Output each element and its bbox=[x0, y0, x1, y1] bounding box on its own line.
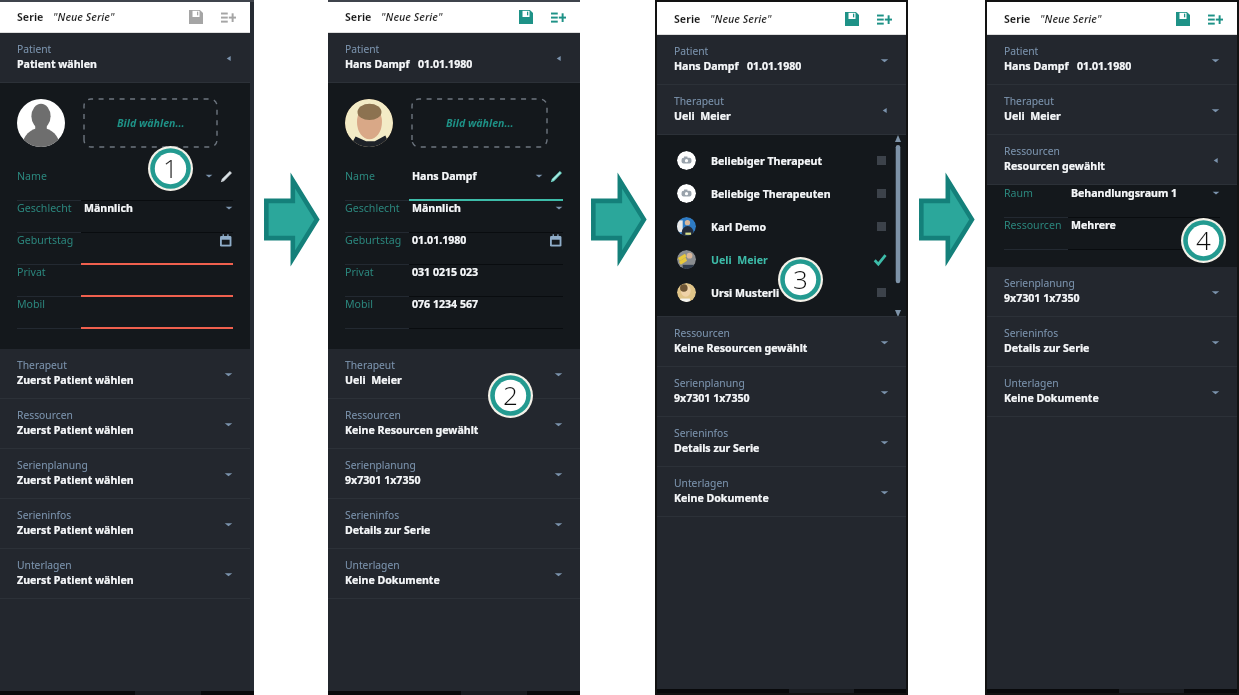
button[interactable]: Serienplanung bbox=[0, 449, 250, 499]
button[interactable]: Ressourcen bbox=[987, 135, 1237, 185]
staticText: Serienplanung bbox=[1004, 276, 1075, 290]
staticText: Mobil bbox=[17, 297, 84, 311]
button[interactable]: Ueli Meier bbox=[657, 243, 906, 276]
button[interactable]: Serienplanung bbox=[657, 367, 906, 417]
button[interactable]: Serienplanung bbox=[328, 449, 580, 499]
staticText: Ressourcen bbox=[1004, 144, 1060, 158]
button[interactable]: Speichern bbox=[513, 4, 539, 30]
staticText: Unterlagen bbox=[345, 558, 400, 572]
button[interactable]: Speichern bbox=[839, 6, 865, 32]
button[interactable]: Bearbeiten bbox=[550, 170, 563, 183]
button[interactable]: Speichern bbox=[1170, 6, 1196, 32]
staticText: Patient bbox=[345, 42, 380, 56]
staticText: Serienplanung bbox=[674, 376, 745, 390]
staticText: Therapeut bbox=[674, 94, 724, 108]
staticText: Serienplanung bbox=[345, 458, 416, 472]
staticText: Beliebiger Therapeut bbox=[711, 154, 877, 168]
staticText: Details zur Serie bbox=[1004, 341, 1090, 355]
staticText: Hans Dampf 01.01.1980 bbox=[345, 57, 473, 71]
button[interactable]: Beliebiger Therapeut bbox=[657, 144, 906, 177]
staticText: Behandlungsraum 1 bbox=[1071, 186, 1212, 200]
button[interactable]: Ressourcen bbox=[328, 399, 580, 449]
staticText: Bild wählen... bbox=[446, 116, 514, 130]
staticText: Privat bbox=[17, 265, 84, 279]
staticText: Details zur Serie bbox=[345, 523, 431, 537]
button[interactable]: Therapeut bbox=[987, 85, 1237, 135]
button[interactable]: Unterlagen bbox=[0, 549, 250, 599]
staticText: Hans Dampf bbox=[412, 169, 535, 183]
staticText: 9x7301 1x7350 bbox=[345, 473, 421, 487]
button[interactable]: Neue Serie hinzufügen bbox=[871, 6, 897, 32]
button[interactable]: Ressourcen bbox=[0, 399, 250, 449]
button[interactable]: Bild wählen bbox=[412, 99, 547, 147]
staticText: Hans Dampf 01.01.1980 bbox=[1004, 59, 1132, 73]
staticText: 01.01.1980 bbox=[412, 233, 543, 247]
button[interactable]: Unterlagen bbox=[657, 467, 906, 517]
staticText: Männlich bbox=[412, 201, 555, 215]
button[interactable]: Ressourcen bbox=[657, 317, 906, 367]
button[interactable]: Serieninfos bbox=[657, 417, 906, 467]
staticText: Unterlagen bbox=[1004, 376, 1059, 390]
button[interactable]: Bearbeiten bbox=[220, 170, 233, 183]
staticText: "Neue Serie" bbox=[381, 10, 443, 24]
button[interactable]: Serieninfos bbox=[987, 317, 1237, 367]
button[interactable]: Unterlagen bbox=[987, 367, 1237, 417]
staticText: Unterlagen bbox=[674, 476, 729, 490]
button[interactable]: Patientenbild bbox=[17, 99, 65, 147]
button[interactable]: Neue Serie hinzufügen bbox=[1202, 6, 1228, 32]
staticText: "Neue Serie" bbox=[53, 10, 115, 24]
staticText: Serie bbox=[17, 10, 44, 24]
staticText: Patient wählen bbox=[17, 57, 97, 71]
staticText: Ressourcen bbox=[17, 408, 73, 422]
staticText: Ueli Meier bbox=[674, 109, 731, 123]
staticText: Therapeut bbox=[17, 358, 67, 372]
button[interactable]: Karl Demo bbox=[657, 210, 906, 243]
button[interactable]: Therapeut bbox=[328, 349, 580, 399]
staticText: Serieninfos bbox=[1004, 326, 1059, 340]
staticText: Raum bbox=[1004, 186, 1071, 200]
staticText: "Neue Serie" bbox=[710, 12, 772, 26]
button[interactable]: Serieninfos bbox=[0, 499, 250, 549]
staticText: 9x7301 1x7350 bbox=[674, 391, 750, 405]
button[interactable]: Patient bbox=[987, 35, 1237, 85]
staticText: 9x7301 1x7350 bbox=[1004, 291, 1080, 305]
staticText: Patient bbox=[1004, 44, 1039, 58]
staticText: Zuerst Patient wählen bbox=[17, 473, 134, 487]
button[interactable]: Speichern bbox=[183, 4, 209, 30]
staticText: Mobil bbox=[345, 297, 412, 311]
staticText: Serie bbox=[345, 10, 372, 24]
staticText: Keine Resourcen gewählt bbox=[345, 423, 479, 437]
button[interactable]: Ursi Musterli bbox=[657, 276, 906, 309]
staticText: Serieninfos bbox=[674, 426, 729, 440]
button[interactable]: Neue Serie hinzufügen bbox=[215, 4, 241, 30]
button[interactable]: Neue Serie hinzufügen bbox=[545, 4, 571, 30]
button[interactable]: Datum wählen bbox=[220, 234, 233, 247]
button[interactable]: Unterlagen bbox=[328, 549, 580, 599]
staticText: Karl Demo bbox=[711, 220, 877, 234]
staticText: Zuerst Patient wählen bbox=[17, 523, 134, 537]
button[interactable]: Bild wählen bbox=[84, 99, 217, 147]
button[interactable]: Patient bbox=[657, 35, 906, 85]
staticText: Name bbox=[17, 169, 84, 183]
button[interactable]: Therapeut bbox=[0, 349, 250, 399]
staticText: Keine Dokumente bbox=[1004, 391, 1099, 405]
staticText: Geschlecht bbox=[17, 201, 84, 215]
staticText: Ueli Meier bbox=[711, 253, 874, 267]
button[interactable]: Patient bbox=[328, 33, 580, 83]
staticText: Geburtstag bbox=[345, 233, 412, 247]
button[interactable]: Datum wählen bbox=[550, 234, 563, 247]
button[interactable]: Beliebige Therapeuten bbox=[657, 177, 906, 210]
button[interactable]: Serieninfos bbox=[328, 499, 580, 549]
button[interactable]: Serienplanung bbox=[987, 267, 1237, 317]
button[interactable]: Patient bbox=[0, 33, 250, 83]
staticText: Mehrere bbox=[1071, 218, 1220, 232]
button[interactable]: Therapeut bbox=[657, 85, 906, 135]
button[interactable]: Patientenbild bbox=[345, 99, 393, 147]
staticText: "Neue Serie" bbox=[1040, 12, 1102, 26]
staticText: Unterlagen bbox=[17, 558, 72, 572]
staticText: Therapeut bbox=[345, 358, 395, 372]
staticText: Resourcen gewählt bbox=[1004, 159, 1105, 173]
staticText: 1 bbox=[163, 150, 178, 185]
